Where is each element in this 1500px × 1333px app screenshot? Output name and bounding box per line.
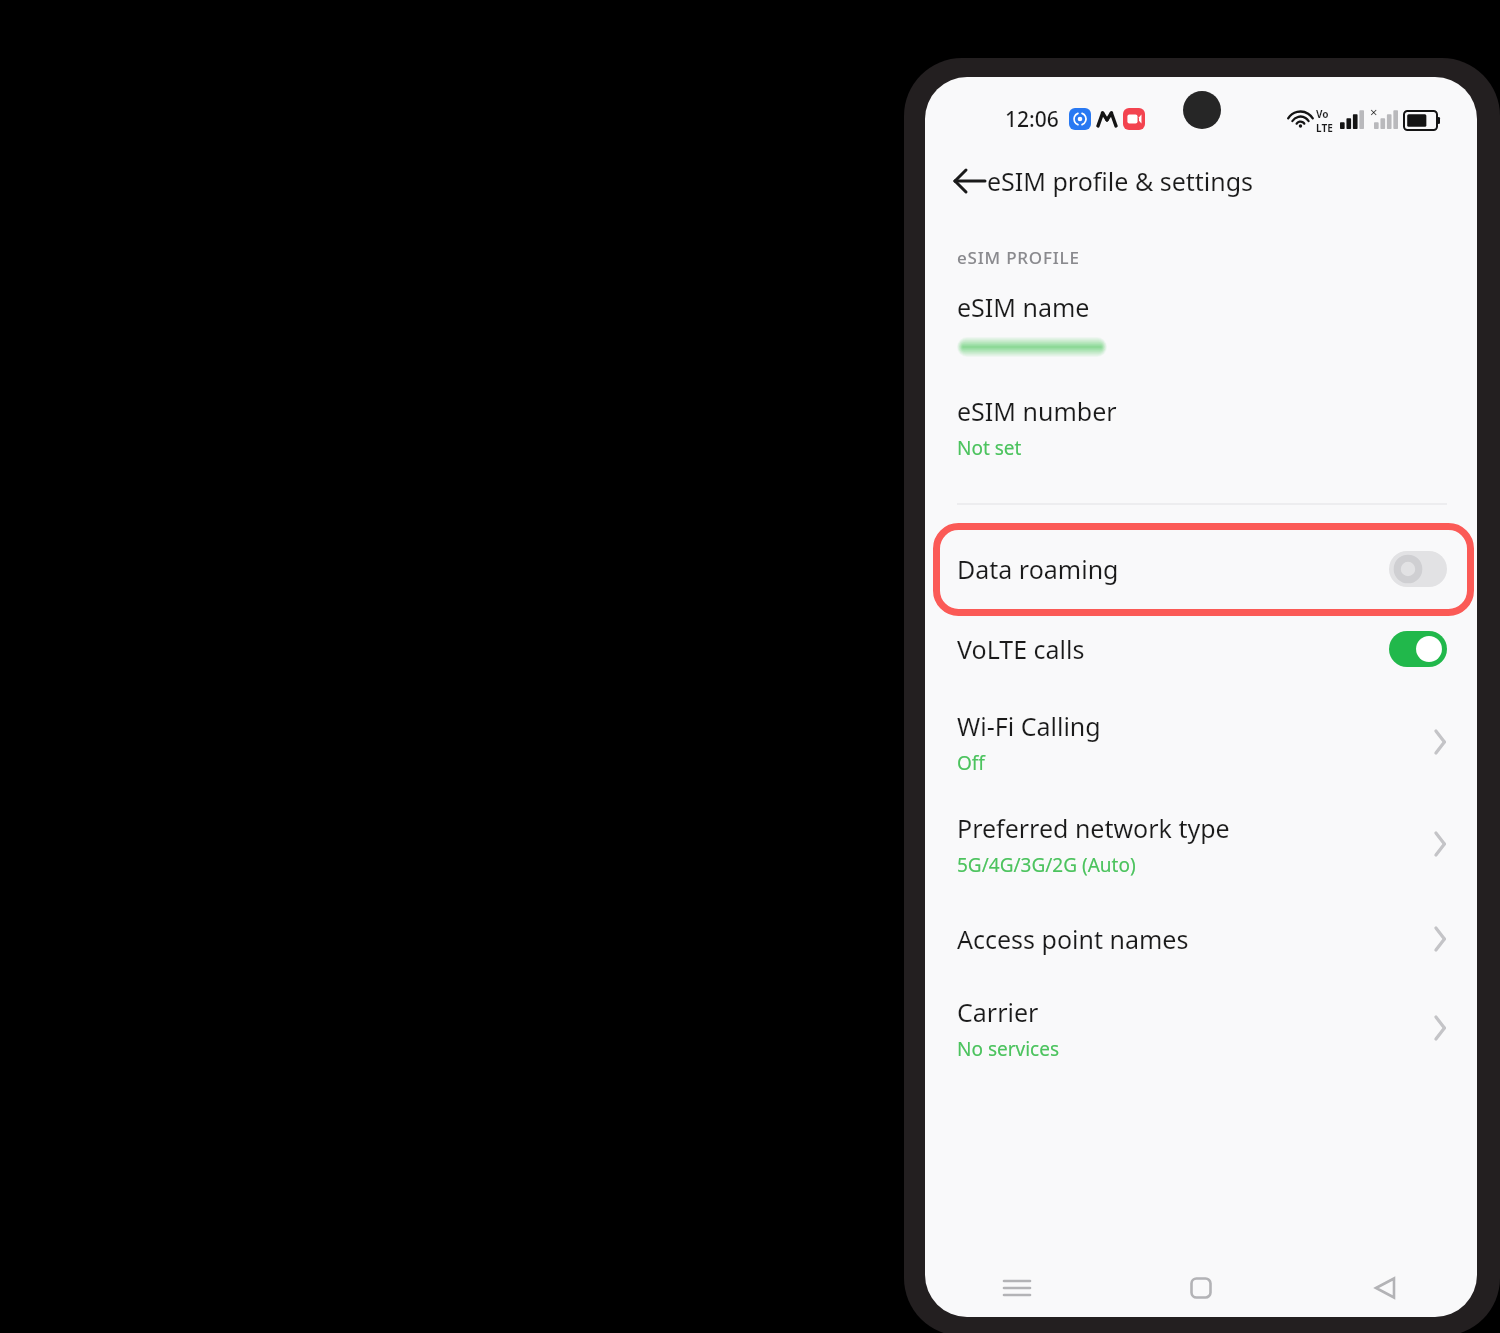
button[interactable]: eSIM name: [925, 290, 1477, 380]
staticText: eSIM profile & settings: [987, 164, 1254, 198]
button[interactable]: Carrier: [925, 982, 1477, 1074]
button[interactable]: eSIM number: [925, 394, 1477, 480]
staticText: 12:06: [1005, 105, 1059, 134]
staticText: Not set: [957, 435, 1022, 461]
button[interactable]: Access point names: [925, 904, 1477, 974]
staticText: Access point names: [957, 922, 1189, 956]
button[interactable]: VoLTE calls toggle, on: [1389, 631, 1447, 667]
button[interactable]: Preferred network type: [925, 798, 1477, 890]
staticText: eSIM PROFILE: [957, 246, 1080, 269]
button[interactable]: Back: [948, 159, 992, 203]
button[interactable]: Back: [1293, 1260, 1477, 1316]
staticText: VoLTE calls: [957, 632, 1389, 666]
button[interactable]: Recent apps: [925, 1260, 1109, 1316]
staticText: Data roaming: [957, 552, 1389, 586]
staticText: 5G/4G/3G/2G (Auto): [957, 852, 1136, 878]
staticText: No services: [957, 1036, 1060, 1062]
staticText: LTE: [1316, 121, 1333, 135]
staticText: Carrier: [957, 995, 1039, 1029]
staticText: Off: [957, 750, 985, 776]
button[interactable]: Data roaming: [925, 528, 1477, 610]
button[interactable]: Home: [1109, 1260, 1293, 1316]
staticText: Vo: [1316, 107, 1329, 121]
staticText: Preferred network type: [957, 811, 1230, 845]
staticText: eSIM name: [957, 290, 1090, 324]
staticText: ×: [1370, 103, 1378, 121]
button[interactable]: Data roaming toggle, off: [1389, 551, 1447, 587]
button[interactable]: VoLTE calls: [925, 616, 1477, 682]
staticText: eSIM number: [957, 394, 1117, 428]
staticText: Wi-Fi Calling: [957, 709, 1101, 743]
button[interactable]: Wi-Fi Calling: [925, 696, 1477, 788]
